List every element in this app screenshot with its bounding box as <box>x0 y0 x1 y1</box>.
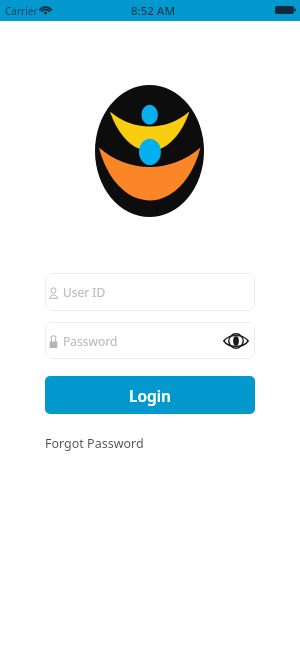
button[interactable]: Show password <box>223 332 249 350</box>
button[interactable]: Forgot Password <box>45 435 144 452</box>
staticText: 8:52 AM <box>131 3 175 19</box>
button[interactable]: Password <box>45 322 255 359</box>
staticText: Login <box>129 385 172 406</box>
staticText: User ID <box>63 284 106 300</box>
staticText: Forgot Password <box>45 435 144 452</box>
button[interactable]: User ID <box>45 273 255 311</box>
staticText: Carrier <box>5 4 38 18</box>
button[interactable]: Login <box>45 376 255 414</box>
staticText: Password <box>63 333 118 349</box>
